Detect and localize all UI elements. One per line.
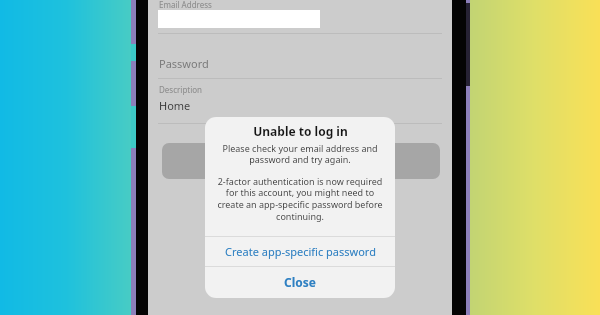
staticText: 2-factor authentication is now required … — [214, 175, 386, 223]
staticText: Close — [284, 274, 316, 290]
staticText: Home — [159, 98, 191, 113]
staticText: Create app-specific password — [225, 244, 376, 259]
staticText: Description — [159, 84, 203, 95]
button[interactable]: Home — [148, 98, 452, 118]
staticText: Email Address — [159, 0, 212, 10]
button[interactable]: Close — [205, 267, 395, 296]
button[interactable]: Password — [148, 50, 452, 78]
staticText: Please check your email address and pass… — [218, 142, 382, 166]
staticText: Unable to log in — [253, 123, 348, 139]
staticText: Password — [159, 56, 209, 71]
button[interactable] — [162, 143, 440, 179]
button[interactable]: Create app-specific password — [205, 237, 395, 266]
